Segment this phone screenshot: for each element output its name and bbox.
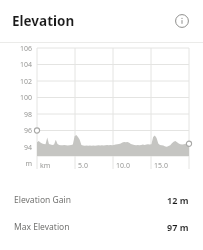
staticText: Elevation Gain (14, 194, 71, 206)
staticText: 97 m (167, 221, 189, 233)
staticText: 102 (5, 77, 32, 87)
button[interactable]: Max Elevation (0, 213, 203, 240)
staticText: 94 (5, 143, 32, 153)
staticText: m (5, 159, 32, 169)
staticText: 12 m (167, 194, 189, 206)
staticText: 98 (5, 110, 32, 120)
staticText: Elevation (12, 12, 75, 30)
staticText: 96 (5, 126, 32, 136)
staticText: 104 (5, 60, 32, 70)
staticText: 15.0 (154, 161, 168, 171)
staticText: Max Elevation (14, 221, 70, 233)
button[interactable]: Elevation Gain (0, 186, 203, 213)
button[interactable]: Info (170, 9, 194, 33)
staticText: 10.0 (116, 161, 130, 171)
staticText: 106 (5, 44, 32, 54)
staticText: 100 (5, 93, 32, 103)
staticText: km (40, 161, 51, 171)
staticText: 5.0 (78, 161, 88, 171)
